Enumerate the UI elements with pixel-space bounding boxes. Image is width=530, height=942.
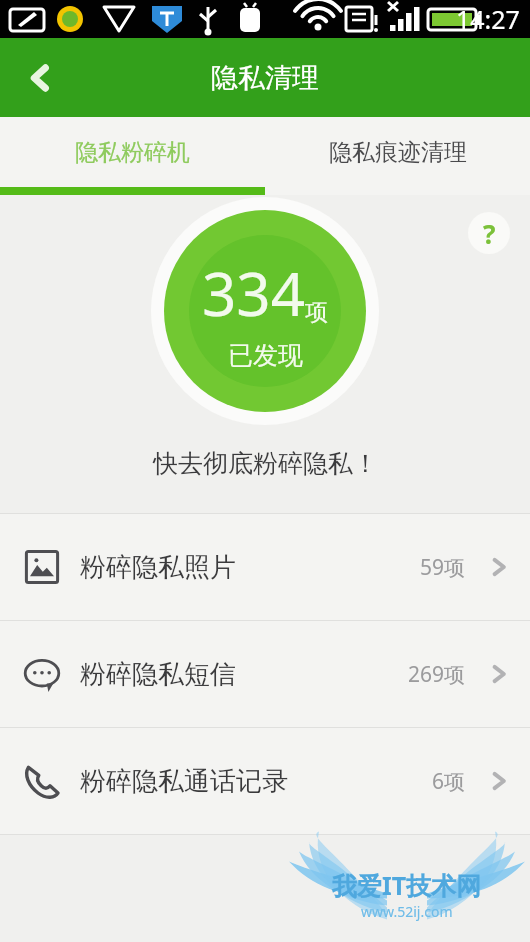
- staticText: 59项: [420, 553, 466, 582]
- staticText: ?: [483, 216, 496, 251]
- staticText: 快去彻底粉碎隐私！: [153, 448, 378, 479]
- button[interactable]: Back: [0, 38, 80, 117]
- staticText: 14:27: [456, 2, 520, 36]
- staticText: www.52ij.com: [361, 902, 453, 921]
- button[interactable]: 隐私痕迹清理: [265, 117, 530, 187]
- staticText: 已发现: [228, 340, 303, 371]
- staticText: 隐私清理: [211, 61, 319, 95]
- button[interactable]: 粉碎隐私短信: [0, 621, 530, 727]
- staticText: 269项: [408, 660, 466, 689]
- button[interactable]: 粉碎隐私通话记录: [0, 728, 530, 834]
- staticText: 334: [202, 252, 305, 334]
- button[interactable]: 粉碎隐私照片: [0, 514, 530, 620]
- button[interactable]: 隐私粉碎机: [0, 117, 265, 187]
- staticText: 粉碎隐私通话记录: [80, 765, 432, 798]
- staticText: 粉碎隐私短信: [80, 658, 408, 691]
- staticText: 6项: [432, 767, 466, 796]
- staticText: 隐私痕迹清理: [329, 138, 467, 167]
- staticText: 粉碎隐私照片: [80, 551, 420, 584]
- button[interactable]: Help: [468, 212, 510, 254]
- staticText: 项: [305, 298, 328, 327]
- staticText: 我爱IT技术网: [332, 868, 482, 902]
- staticText: 隐私粉碎机: [75, 138, 190, 167]
